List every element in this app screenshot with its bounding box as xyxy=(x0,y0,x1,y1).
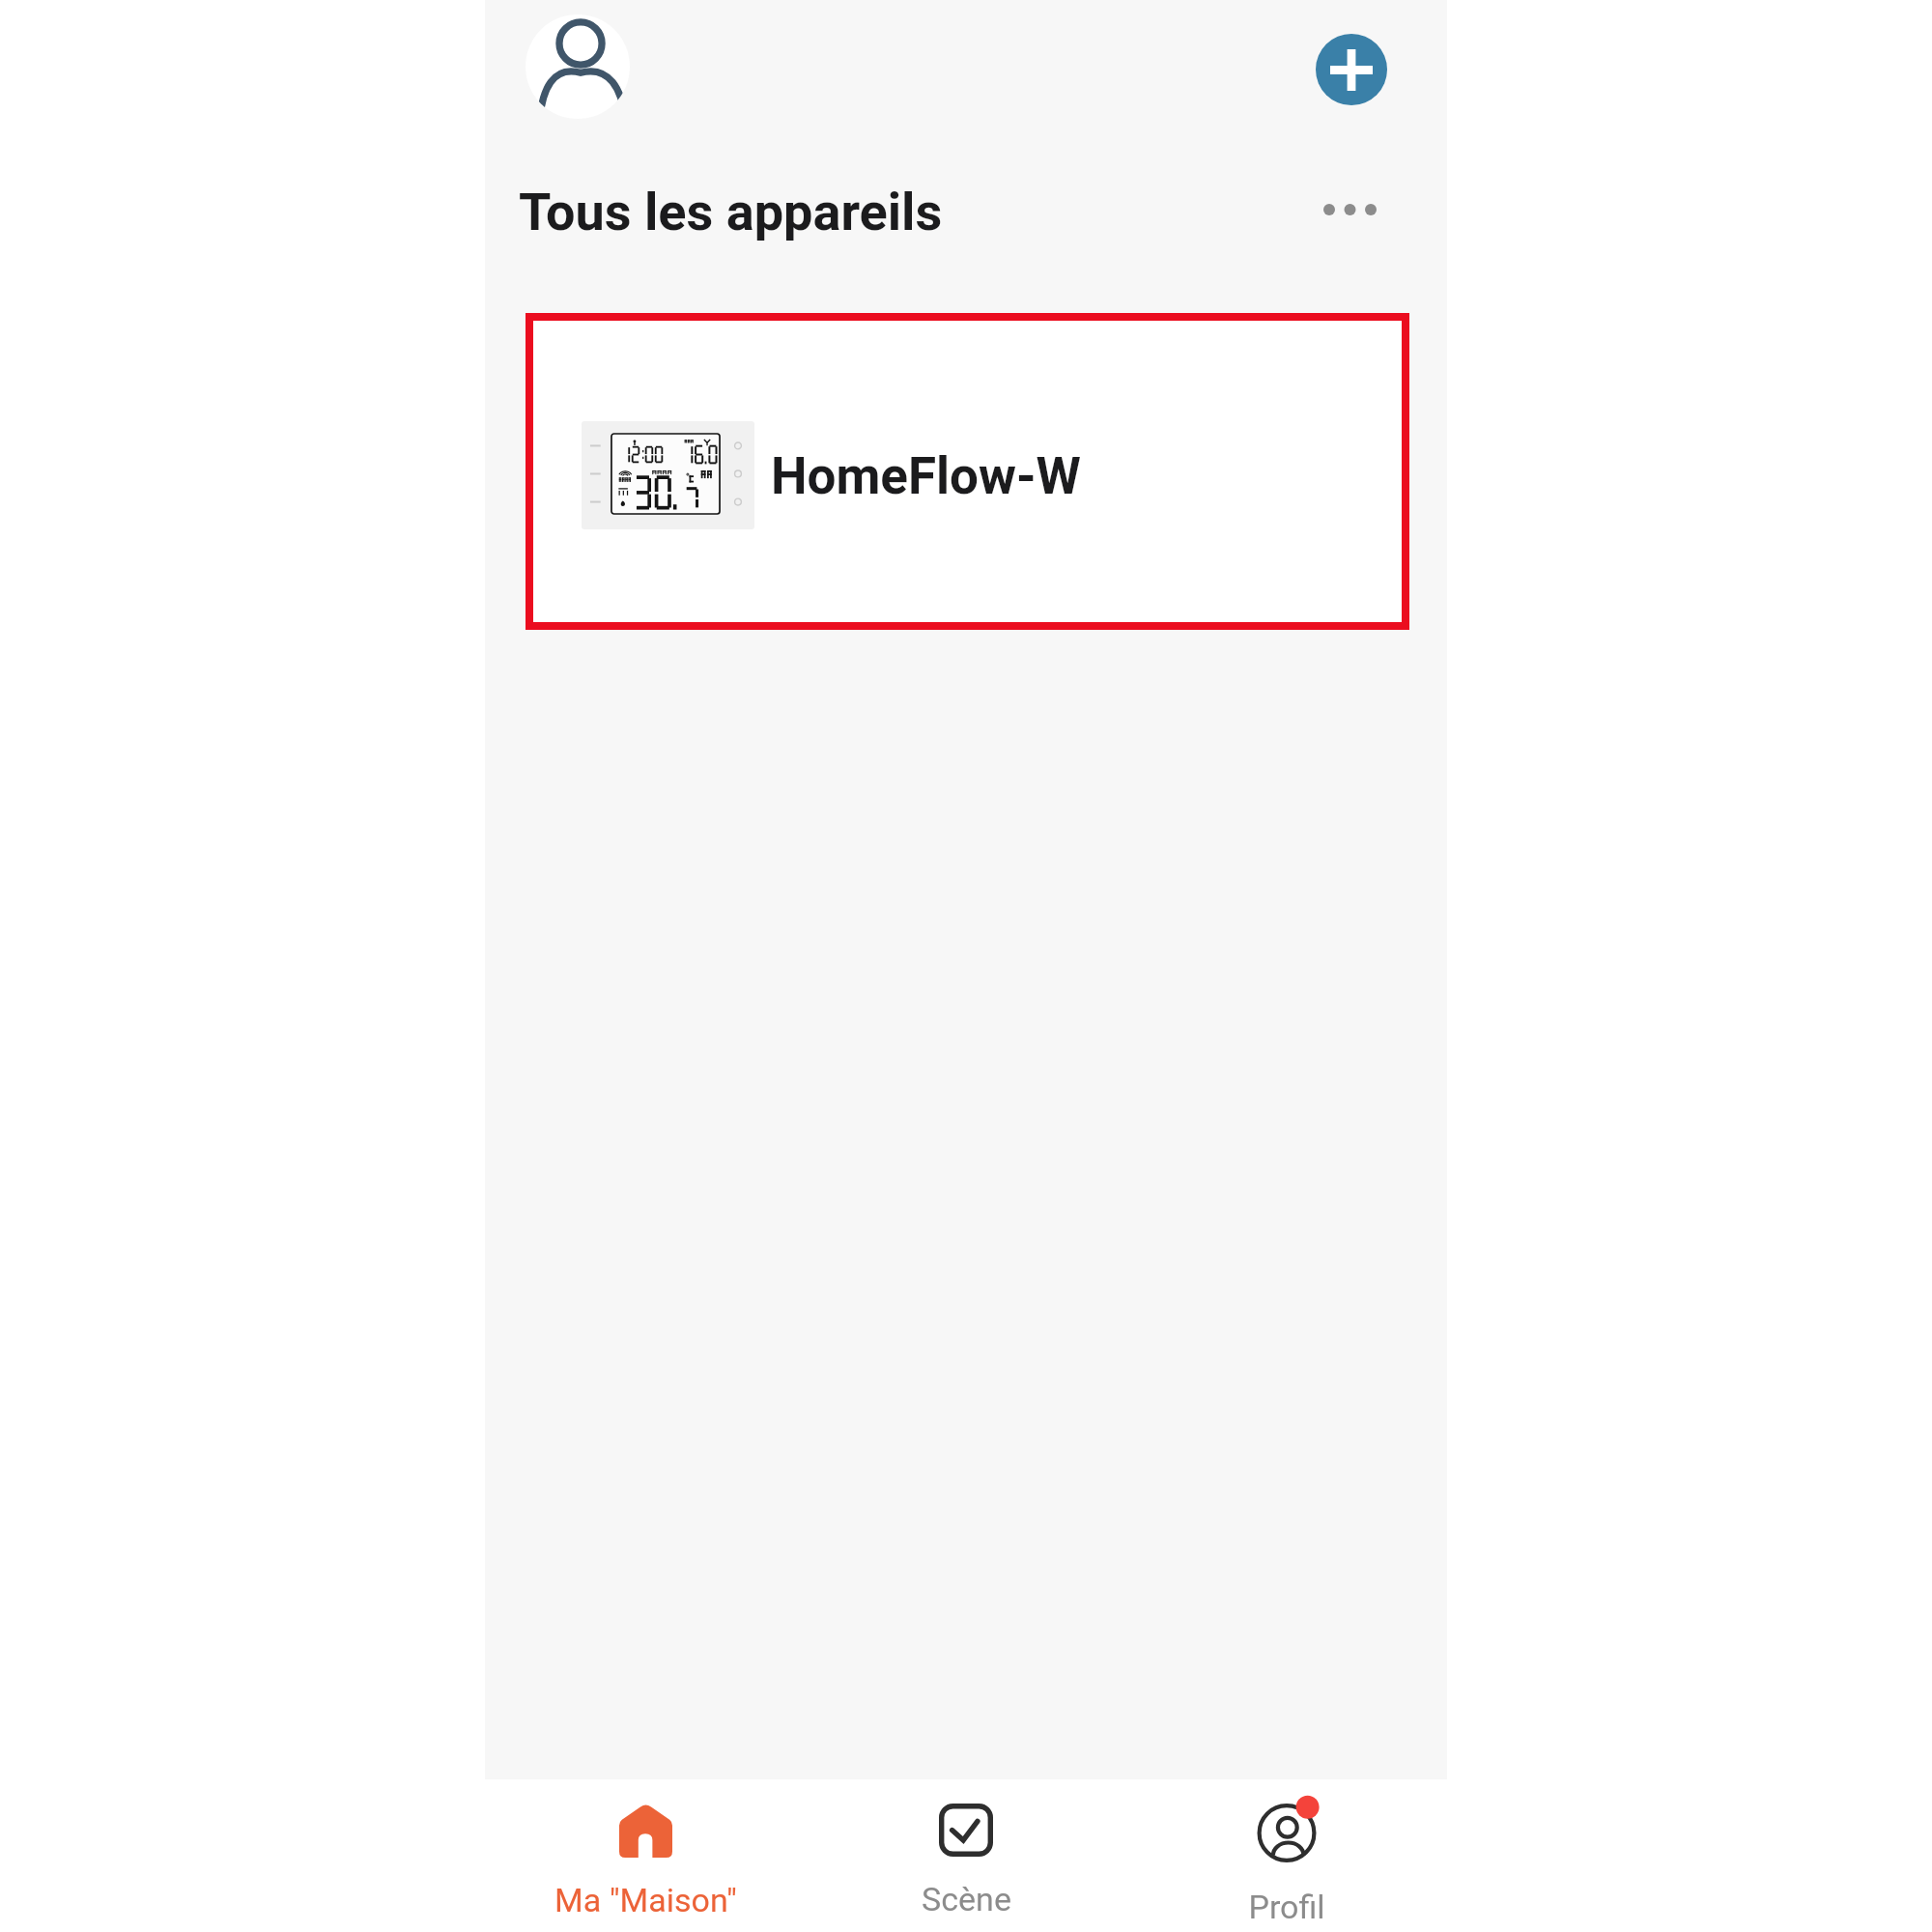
button[interactable]: Add device xyxy=(1316,34,1387,105)
staticText: Scène xyxy=(922,1880,1011,1918)
staticText: HomeFlow-W xyxy=(771,446,1081,506)
staticText: Ma "Maison" xyxy=(554,1881,737,1919)
button[interactable]: Account xyxy=(526,14,630,119)
button[interactable]: More options xyxy=(1294,169,1405,250)
button[interactable]: Scène xyxy=(806,1779,1126,1932)
button[interactable]: Profil xyxy=(1126,1779,1447,1932)
button[interactable]: HomeFlow-W xyxy=(526,313,1409,630)
staticText: Profil xyxy=(1248,1888,1325,1926)
staticText: Tous les appareils xyxy=(519,182,943,242)
button[interactable]: Ma "Maison" xyxy=(485,1779,806,1932)
